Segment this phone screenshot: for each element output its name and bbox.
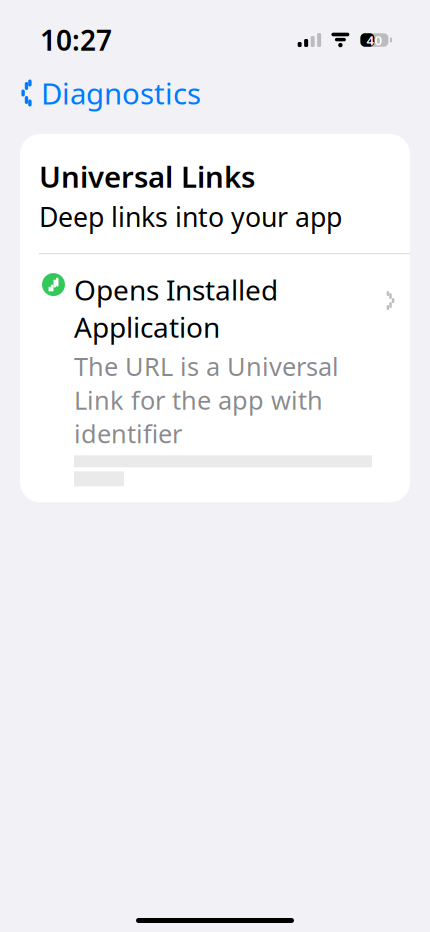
staticText: Diagnostics: [41, 73, 201, 112]
staticText: Opens Installed Application: [74, 271, 278, 345]
staticText: Universal Links: [39, 157, 255, 196]
button[interactable]: Diagnostics: [0, 64, 217, 121]
staticText: Deep links into your app: [39, 199, 342, 234]
staticText: 40: [366, 31, 382, 49]
button[interactable]: Opens Installed Application: [20, 254, 410, 502]
staticText: 10:27: [40, 21, 112, 59]
staticText: The URL is a Universal Link for the app …: [74, 349, 339, 450]
